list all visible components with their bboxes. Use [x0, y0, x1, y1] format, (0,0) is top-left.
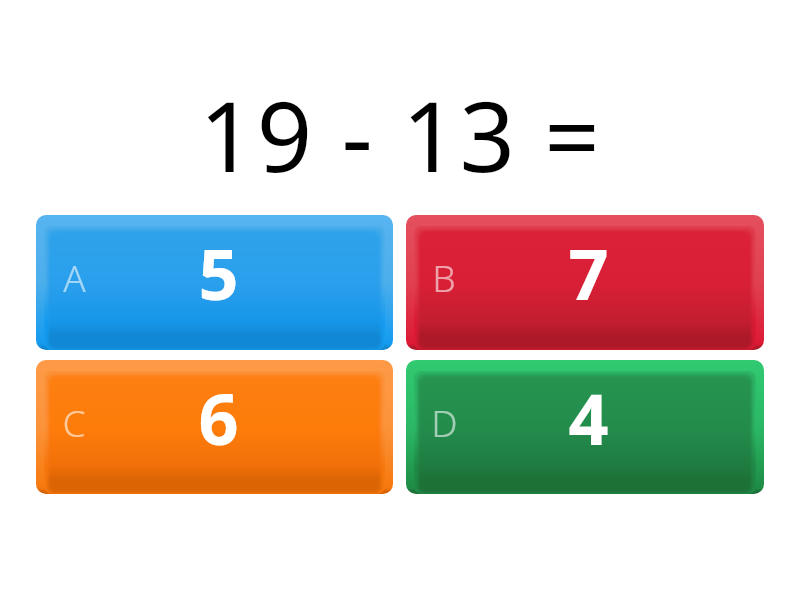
staticText: 4	[568, 370, 609, 450]
staticText: 5	[198, 225, 239, 305]
staticText: 19 - 13 =	[199, 68, 602, 192]
staticText: B	[432, 252, 456, 302]
staticText: 7	[568, 225, 609, 305]
staticText: 6	[198, 370, 239, 450]
button[interactable]: A	[36, 215, 393, 350]
staticText: A	[63, 252, 86, 302]
button[interactable]: C	[36, 360, 393, 494]
staticText: C	[62, 397, 86, 447]
button[interactable]: D	[406, 360, 764, 494]
staticText: D	[431, 397, 458, 447]
button[interactable]: B	[406, 215, 764, 350]
